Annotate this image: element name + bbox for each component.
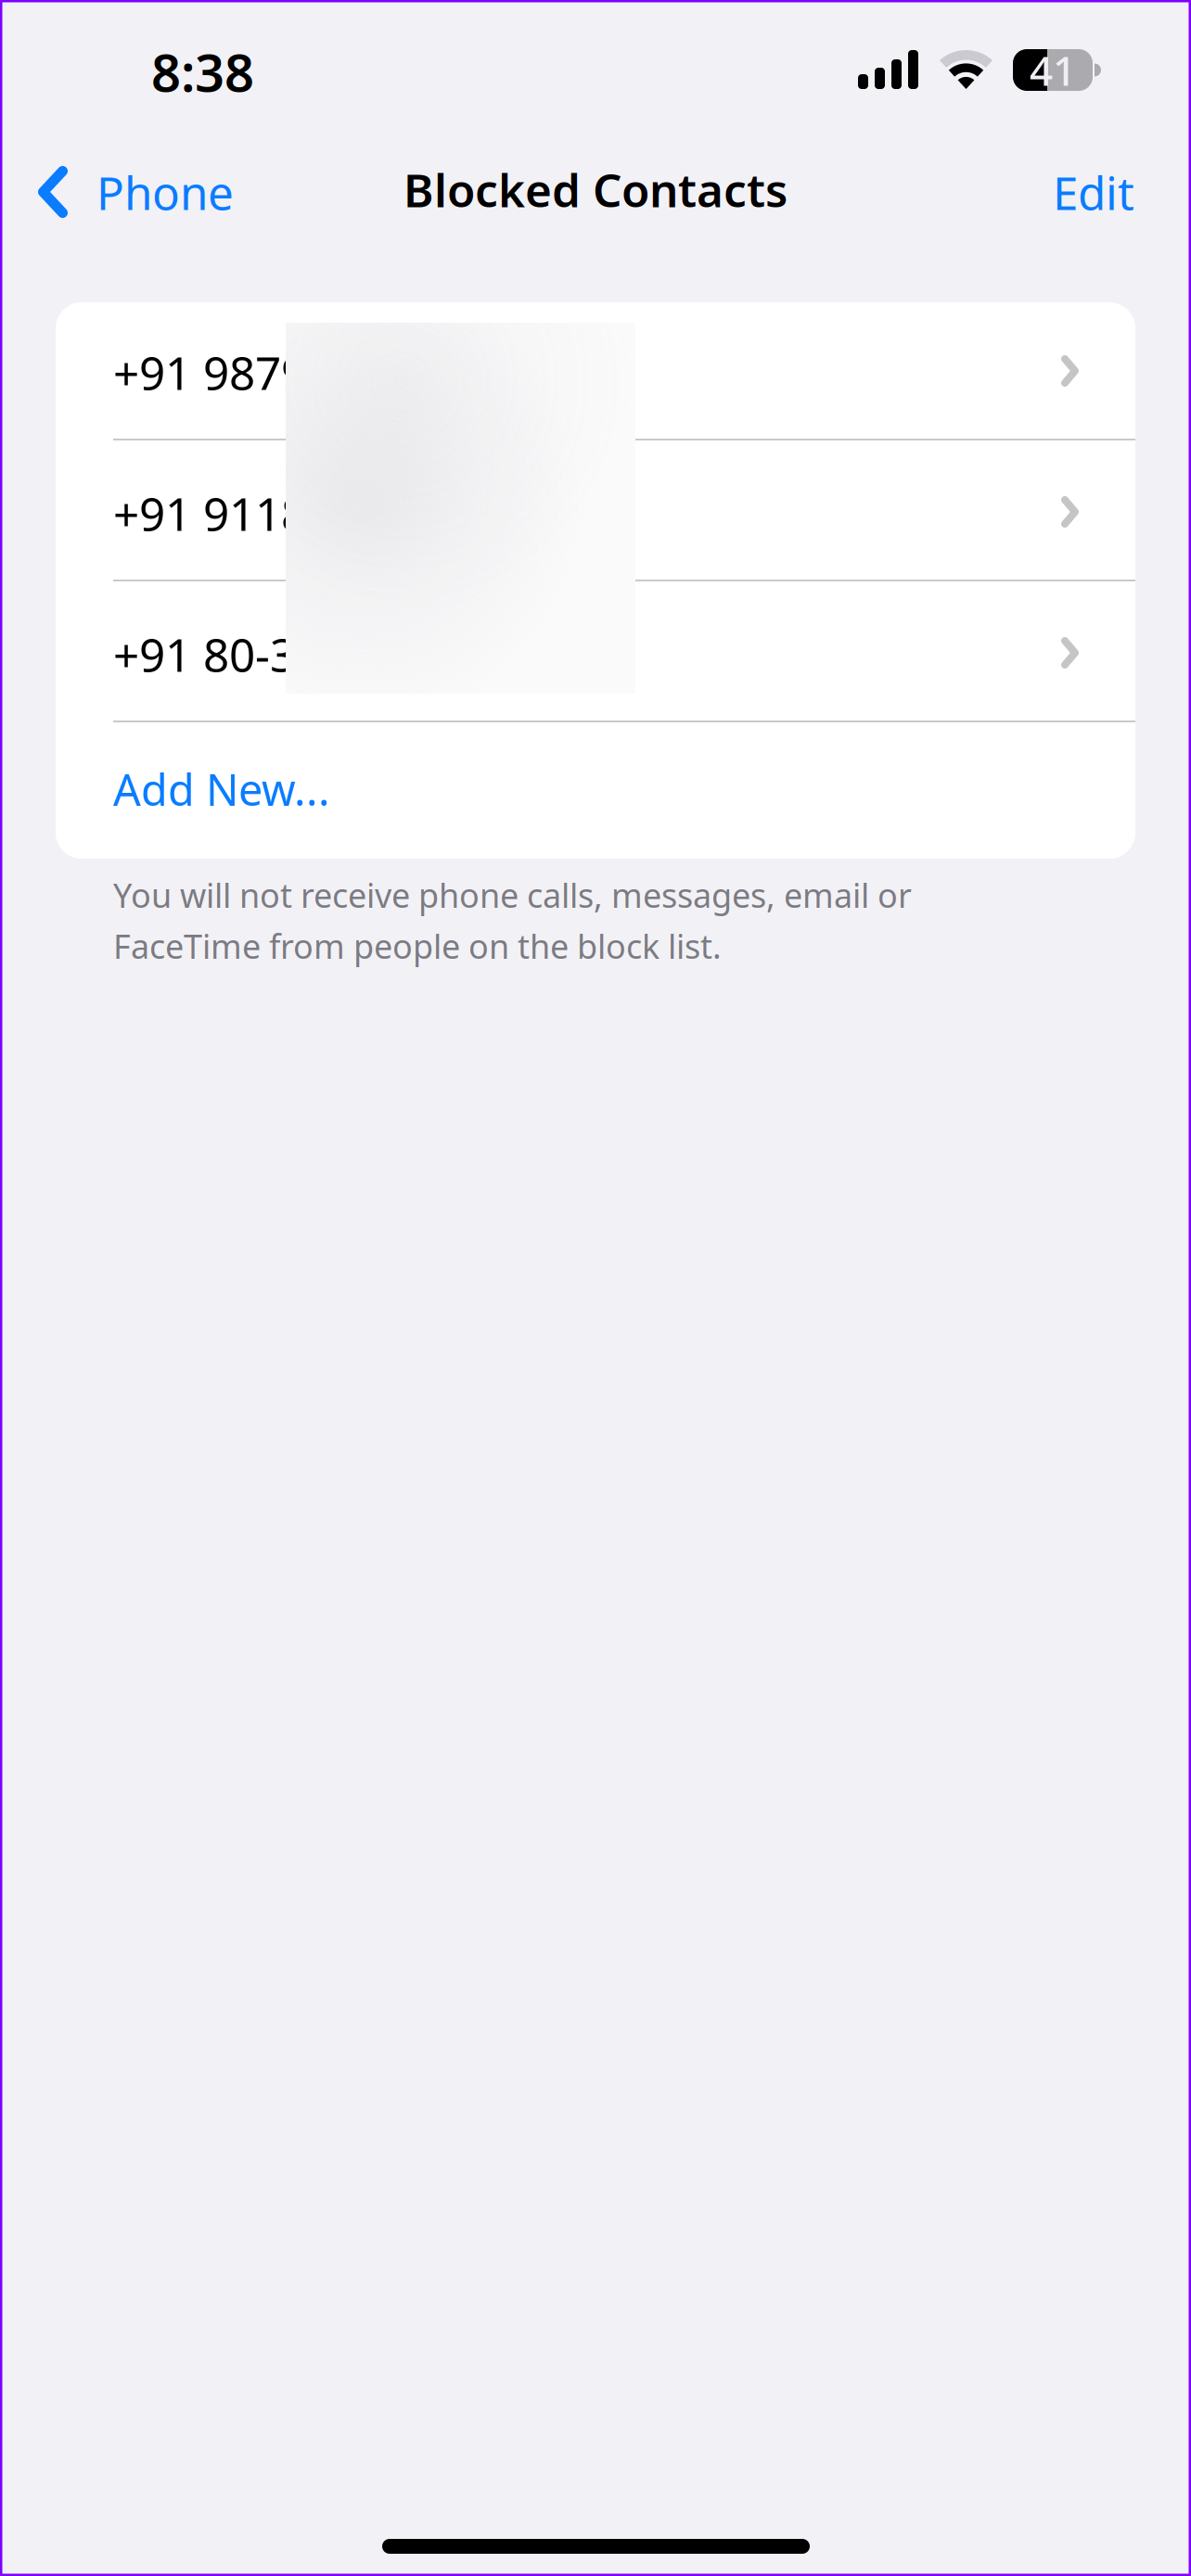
staticText: Blocked Contacts [403, 159, 788, 220]
staticText: +91 80-3456 7890 [113, 624, 490, 684]
staticText: Add New... [113, 760, 330, 818]
staticText: FaceTime from people on the block list. [113, 924, 722, 968]
button[interactable]: +91 91180 76543 [56, 440, 1135, 580]
staticText: Phone [96, 162, 234, 223]
staticText: 41 [1030, 43, 1076, 97]
staticText: You will not receive phone calls, messag… [113, 873, 912, 917]
staticText: 8:38 [151, 37, 254, 106]
staticText: +91 91180 76543 [113, 483, 475, 543]
staticText: +91 98795 43210 [113, 342, 475, 402]
staticText: Edit [1053, 162, 1134, 223]
button[interactable]: Phone [0, 145, 256, 239]
button[interactable]: Add New... [56, 722, 1135, 861]
button[interactable]: +91 80-3456 7890 [56, 581, 1135, 721]
button[interactable]: +91 98795 43210 [56, 300, 1135, 439]
button[interactable]: Edit [1025, 143, 1191, 237]
